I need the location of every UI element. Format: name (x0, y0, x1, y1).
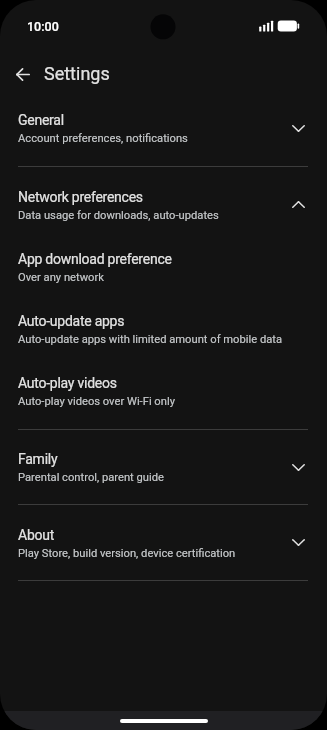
staticText: Parental control, parent guide (18, 471, 164, 484)
button[interactable]: Back (0, 52, 45, 97)
button[interactable]: General (0, 90, 327, 166)
staticText: Auto-play videos (18, 375, 117, 391)
button[interactable]: App download preference (0, 242, 327, 304)
staticText: Account preferences, notifications (18, 132, 188, 145)
staticText: Auto-update apps with limited amount of … (18, 333, 283, 346)
staticText: 10:00 (27, 19, 59, 34)
button[interactable]: Network preferences (0, 166, 327, 242)
staticText: Over any network (18, 271, 104, 284)
staticText: Network preferences (18, 189, 143, 205)
staticText: App download preference (18, 251, 172, 267)
staticText: About (18, 527, 55, 543)
staticText: Auto-play videos over Wi-Fi only (18, 395, 175, 408)
staticText: Play Store, build version, device certif… (18, 547, 236, 560)
staticText: Family (18, 451, 58, 467)
staticText: Auto-update apps (18, 313, 125, 329)
staticText: Settings (44, 63, 110, 84)
button[interactable]: Auto-update apps (0, 304, 327, 366)
button[interactable]: Family (0, 429, 327, 505)
staticText: Data usage for downloads, auto-updates (18, 209, 219, 222)
staticText: General (18, 112, 64, 128)
button[interactable]: Auto-play videos (0, 366, 327, 428)
button[interactable]: About (0, 504, 327, 580)
